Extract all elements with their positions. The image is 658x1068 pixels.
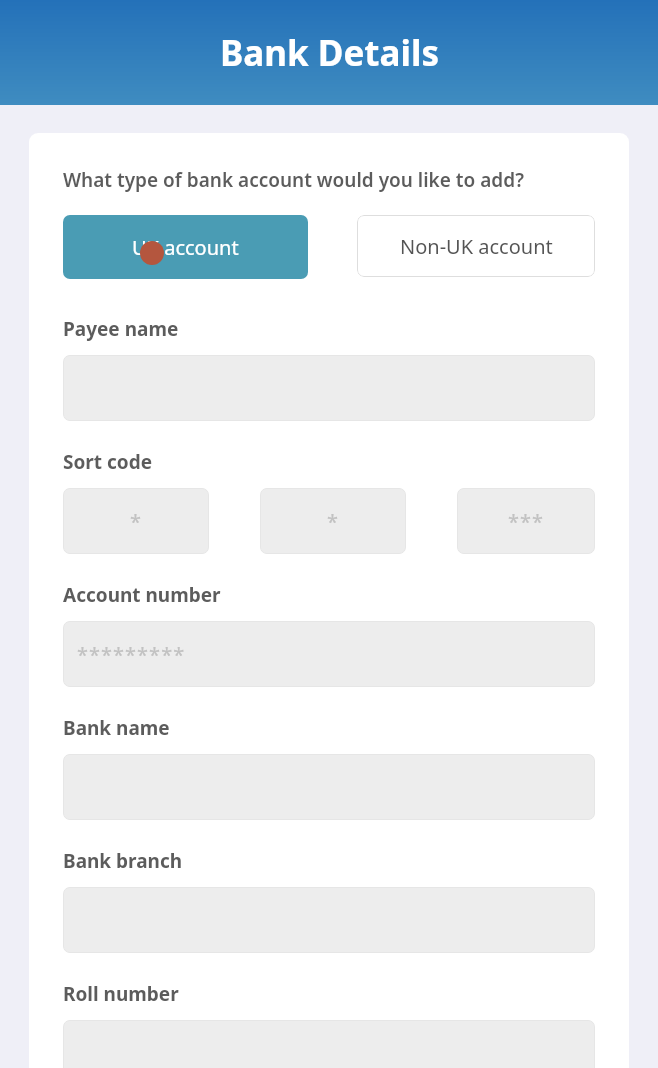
staticText: *** [508, 508, 545, 535]
staticText: * [130, 508, 143, 535]
staticText: * [327, 508, 340, 535]
staticText: Payee name [63, 316, 179, 342]
staticText: ********* [77, 641, 186, 668]
staticText: Non-UK account [400, 233, 553, 260]
staticText: Sort code [63, 449, 153, 475]
staticText: Roll number [63, 981, 179, 1007]
staticText: Account number [63, 582, 221, 608]
button[interactable]: UK account [63, 215, 308, 279]
staticText: Bank Details [220, 29, 439, 77]
button[interactable]: Non-UK account [357, 215, 595, 277]
button[interactable]: *** [457, 488, 595, 554]
staticText: Bank name [63, 715, 170, 741]
button[interactable]: * [260, 488, 406, 554]
staticText: UK account [132, 234, 239, 261]
staticText: What type of bank account would you like… [63, 167, 524, 193]
staticText: Bank branch [63, 848, 183, 874]
button[interactable]: * [63, 488, 209, 554]
button[interactable]: ********* [63, 621, 595, 687]
